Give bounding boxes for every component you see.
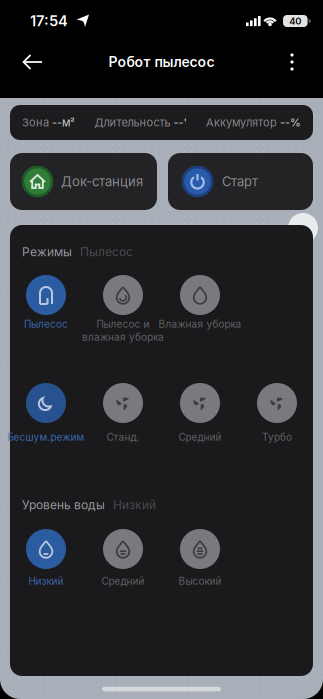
staticText: Робот пылесос — [108, 53, 214, 70]
staticText: Влажная уборка — [158, 318, 241, 330]
button[interactable]: More — [281, 51, 303, 73]
staticText: Старт — [222, 174, 258, 189]
staticText: --' — [173, 116, 186, 129]
button[interactable]: Низкий — [7, 529, 84, 605]
button[interactable]: Средний — [161, 383, 238, 459]
staticText: Низкий — [113, 498, 156, 512]
staticText: Пылесос — [80, 245, 133, 259]
staticText: Низкий — [28, 575, 63, 587]
staticText: Режимы — [22, 245, 72, 259]
button[interactable]: Турбо — [238, 383, 315, 459]
staticText: Длительность — [94, 116, 170, 129]
button[interactable]: Влажная уборка — [161, 275, 238, 351]
button[interactable]: Док-станция — [10, 153, 157, 210]
staticText: Станд. — [106, 431, 139, 443]
staticText: --м² — [52, 116, 75, 129]
staticText: Средний — [178, 431, 221, 443]
button[interactable]: Пылесос и — [84, 275, 161, 351]
button[interactable]: Бесшум.режим — [7, 383, 84, 459]
staticText: влажная уборка — [82, 331, 164, 343]
staticText: 40 — [289, 15, 301, 27]
button[interactable]: Back — [21, 51, 45, 73]
staticText: Пылесос и — [96, 318, 149, 330]
staticText: Док-станция — [61, 174, 143, 189]
button[interactable]: Пылесос — [7, 275, 84, 351]
button[interactable]: Map controls — [288, 213, 318, 243]
button[interactable]: Средний — [84, 529, 161, 605]
staticText: Высокий — [178, 575, 221, 587]
staticText: 17:54 — [30, 12, 68, 30]
staticText: Средний — [101, 575, 144, 587]
button[interactable]: Старт — [168, 153, 313, 210]
staticText: Аккумулятор — [206, 116, 277, 129]
staticText: --% — [280, 116, 301, 129]
staticText: Пылесос — [24, 318, 68, 330]
staticText: Уровень воды — [22, 498, 105, 512]
staticText: Бесшум.режим — [7, 431, 84, 443]
staticText: Турбо — [262, 431, 292, 443]
staticText: Зона — [22, 116, 49, 129]
button[interactable]: Высокий — [161, 529, 238, 605]
button[interactable]: Станд. — [84, 383, 161, 459]
